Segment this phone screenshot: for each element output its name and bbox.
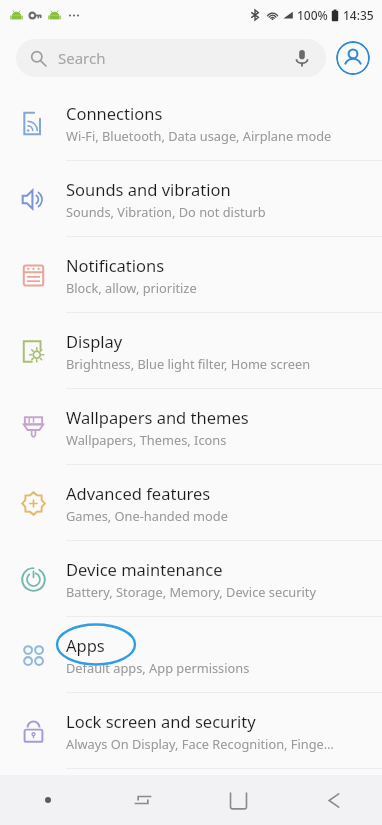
staticText: Brightness, Blue light filter, Home scre… — [66, 355, 311, 372]
button[interactable]: Account — [336, 41, 370, 75]
staticText: Wallpapers and themes — [66, 406, 249, 428]
staticText: Games, One-handed mode — [66, 507, 228, 524]
staticText: Block, allow, prioritize — [66, 279, 197, 296]
button[interactable]: Wallpapers and themes — [0, 389, 382, 464]
staticText: Lock screen and security — [66, 710, 256, 732]
button[interactable]: Search — [16, 39, 326, 77]
staticText: Sounds, Vibration, Do not disturb — [66, 203, 266, 220]
button[interactable]: Advanced features — [0, 465, 382, 540]
staticText: Always On Display, Face Recognition, Fin… — [66, 735, 334, 752]
staticText: Device maintenance — [66, 558, 223, 580]
button[interactable]: Apps — [0, 617, 382, 692]
staticText: Connections — [66, 102, 163, 124]
staticText: Apps — [66, 634, 105, 656]
staticText: 14:35 — [343, 7, 374, 23]
staticText: Wallpapers, Themes, Icons — [66, 431, 227, 448]
button[interactable]: Recents — [95, 775, 190, 825]
staticText: Sounds and vibration — [66, 178, 231, 200]
staticText: Display — [66, 330, 123, 352]
button[interactable]: Notifications — [0, 237, 382, 312]
button[interactable]: Device maintenance — [0, 541, 382, 616]
staticText: Advanced features — [66, 482, 211, 504]
staticText: Search — [58, 48, 106, 68]
staticText: Default apps, App permissions — [66, 659, 250, 676]
staticText: Wi-Fi, Bluetooth, Data usage, Airplane m… — [66, 127, 332, 144]
button[interactable]: Display — [0, 313, 382, 388]
button[interactable]: Back — [286, 775, 382, 825]
staticText: Battery, Storage, Memory, Device securit… — [66, 583, 316, 600]
button[interactable]: Lock screen and security — [0, 693, 382, 768]
button[interactable]: Voice search — [292, 48, 312, 68]
button[interactable]: Home — [190, 775, 286, 825]
button[interactable]: Sounds and vibration — [0, 161, 382, 236]
button[interactable]: Connections — [0, 85, 382, 160]
staticText: Notifications — [66, 254, 165, 276]
staticText: 100% — [297, 7, 328, 23]
